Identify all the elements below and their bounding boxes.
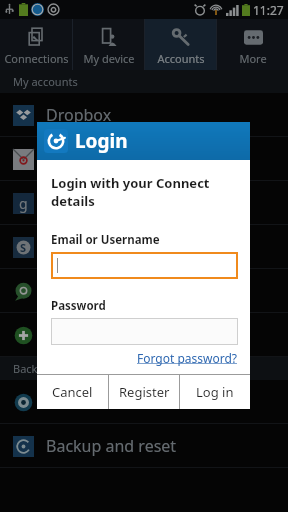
staticText: Register [119,383,170,401]
staticText: Dropbox [46,104,112,126]
button[interactable] [0,269,288,312]
staticText: Cloud [46,391,90,413]
staticText: Backup options [13,361,93,376]
button[interactable]: Cancel [37,375,108,409]
button[interactable]: Backup and reset [0,424,288,467]
staticText: g [19,194,28,213]
button[interactable]: Cloud [0,380,288,423]
button[interactable]: More [217,19,288,70]
button[interactable]: S [0,225,288,268]
staticText: My accounts [13,74,78,89]
staticText: Cancel [52,383,93,401]
button[interactable]: Forgot password? [137,350,238,366]
button[interactable]: Register [109,375,179,409]
staticText: Login with your Connect details [51,174,238,210]
staticText: Accounts [157,51,205,66]
button[interactable] [51,318,238,345]
button[interactable]: Log in [180,375,250,409]
staticText: Forgot password? [137,350,238,366]
button[interactable]: Connections [0,19,72,70]
button[interactable]: Dropbox [0,93,288,136]
button[interactable] [0,313,288,356]
staticText: Login [75,128,128,154]
staticText: 11:27 [253,2,284,18]
staticText: Connections [4,51,69,66]
staticText: Password [51,298,106,314]
button[interactable] [0,137,288,180]
staticText: My device [83,51,135,66]
staticText: S [20,240,27,255]
staticText: More [239,51,267,66]
button[interactable]: Accounts [145,19,216,70]
button[interactable]: g [0,181,288,224]
button[interactable]: My device [73,19,144,70]
staticText: Email or Username [51,232,160,248]
button[interactable] [51,252,238,279]
staticText: Log in [196,383,234,401]
staticText: Backup and reset [46,435,177,457]
